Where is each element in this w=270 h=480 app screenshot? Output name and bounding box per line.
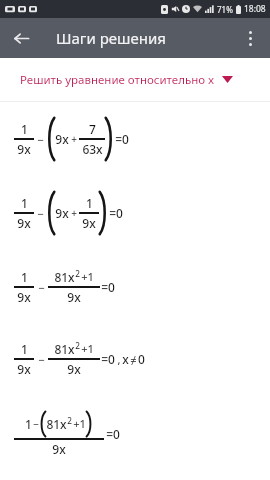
button[interactable]: 1 (0, 324, 270, 394)
staticText: 1 (21, 269, 28, 285)
staticText: − (37, 206, 44, 221)
staticText: 2 (75, 340, 80, 351)
staticText: − (37, 132, 44, 147)
staticText: +1 (81, 269, 94, 284)
staticText: + (71, 132, 77, 146)
staticText: 9x (52, 441, 66, 457)
staticText: x (122, 351, 129, 367)
staticText: +1 (73, 416, 86, 431)
staticText: 81x (54, 269, 75, 285)
staticText: 63x (82, 141, 103, 157)
staticText: 2 (67, 415, 72, 426)
staticText: +1 (81, 341, 94, 356)
staticText: 9x (55, 205, 69, 221)
staticText: 9x (17, 215, 31, 231)
staticText: Решить уравнение относительно x (20, 72, 215, 88)
staticText: 0 (138, 351, 145, 367)
staticText: − (33, 417, 39, 431)
staticText: =0 (109, 205, 123, 221)
staticText: Шаги решения (56, 28, 166, 48)
staticText: − (38, 352, 45, 367)
staticText: =0 (115, 131, 129, 147)
staticText: 9x (67, 289, 81, 305)
staticText: 9x (17, 289, 31, 305)
staticText: 1 (21, 195, 28, 211)
staticText: , (117, 352, 121, 367)
button[interactable]: 1 (0, 176, 270, 250)
staticText: =0 (101, 351, 115, 367)
staticText: − (38, 280, 45, 295)
staticText: =0 (106, 426, 120, 442)
staticText: 81x (46, 416, 67, 432)
staticText: 9x (67, 361, 81, 377)
staticText: + (71, 206, 77, 220)
staticText: 2 (75, 268, 80, 279)
staticText: 9x (17, 361, 31, 377)
staticText: 71% (217, 4, 233, 15)
staticText: 9x (17, 141, 31, 157)
staticText: ≠ (130, 352, 137, 367)
staticText: 7 (89, 121, 96, 137)
staticText: 9x (55, 131, 69, 147)
staticText: 1 (86, 195, 93, 211)
staticText: =0 (101, 279, 115, 295)
staticText: 81x (54, 341, 75, 357)
staticText: 1 (21, 341, 28, 357)
staticText: 1 (21, 121, 28, 137)
button[interactable]: 1 (0, 250, 270, 324)
button[interactable]: Решить уравнение относительно x (0, 58, 270, 101)
button[interactable]: 1 (0, 102, 270, 176)
staticText: 9x (82, 215, 96, 231)
staticText: 18:08 (244, 3, 266, 15)
staticText: 1 (25, 416, 32, 432)
button[interactable]: 1 (0, 394, 270, 474)
button[interactable]: Назад (4, 21, 38, 55)
button[interactable]: Ещё (233, 21, 267, 55)
